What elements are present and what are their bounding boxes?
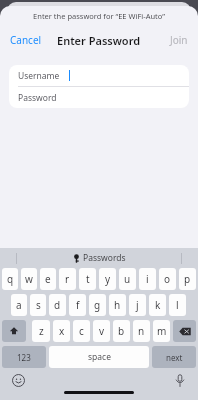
button[interactable]: Dictation [172,372,188,388]
staticText: v [99,324,105,338]
button[interactable]: w [21,268,37,290]
button[interactable]: u [119,268,136,290]
button[interactable]: next [152,346,196,368]
button[interactable]: o [159,268,176,290]
staticText: o [164,272,171,286]
staticText: b [118,324,125,338]
staticText: s [36,298,41,312]
button[interactable]: r [59,268,76,290]
button[interactable]: m [153,320,170,342]
button[interactable]: 123 [2,346,46,368]
button[interactable]: l [169,294,186,316]
button[interactable]: x [53,320,70,342]
button[interactable]: j [129,294,146,316]
staticText: z [39,324,44,338]
staticText: c [79,324,84,338]
staticText: f [76,298,80,312]
staticText: e [45,272,51,286]
button[interactable]: k [149,294,166,316]
button[interactable]: v [93,320,110,342]
staticText: 123 [17,352,31,363]
button[interactable]: q [2,268,18,290]
staticText: n [138,324,145,338]
button[interactable]: p [179,268,196,290]
staticText: m [157,324,167,338]
button[interactable]: f [69,294,86,316]
button[interactable]: g [89,294,106,316]
button[interactable]: Password [9,87,189,108]
button[interactable]: h [109,294,126,316]
staticText: k [155,298,161,312]
button[interactable]: b [113,320,130,342]
staticText: i [146,272,149,286]
staticText: Join [170,33,188,47]
staticText: d [54,298,61,312]
button[interactable]: z [32,320,50,342]
staticText: j [136,298,139,312]
button[interactable]: n [133,320,150,342]
button[interactable]: y [99,268,116,290]
staticText: w [25,272,33,286]
staticText: Cancel [10,33,42,47]
button[interactable]: d [49,294,66,316]
staticText: q [7,272,14,286]
staticText: Username [18,70,60,82]
button[interactable]: c [73,320,90,342]
staticText: r [65,272,70,286]
staticText: x [59,324,65,338]
staticText: t [86,272,90,286]
staticText: Password [18,92,57,104]
staticText: Passwords [83,252,126,264]
staticText: g [94,298,101,312]
button[interactable]: t [79,268,96,290]
button[interactable]: Backspace [173,320,196,342]
staticText: Enter the password for “EE WiFi-Auto” [0,11,198,21]
staticText: space [88,351,111,363]
staticText: u [124,272,131,286]
button[interactable]: i [139,268,156,290]
button[interactable]: s [30,294,46,316]
button[interactable]: Emoji [10,372,26,388]
staticText: a [16,298,22,312]
button[interactable]: Join [160,29,198,51]
button[interactable]: space [49,346,149,368]
button[interactable]: Shift [2,320,26,342]
button[interactable]: Username [9,65,189,86]
button[interactable]: Passwords [73,252,126,264]
staticText: h [114,298,121,312]
button[interactable]: e [40,268,56,290]
staticText: next [166,352,183,363]
staticText: p [184,272,191,286]
staticText: l [176,298,179,312]
button[interactable]: a [11,294,27,316]
button[interactable]: Cancel [0,29,52,51]
staticText: y [105,272,111,286]
staticText: Enter Password [57,33,141,48]
